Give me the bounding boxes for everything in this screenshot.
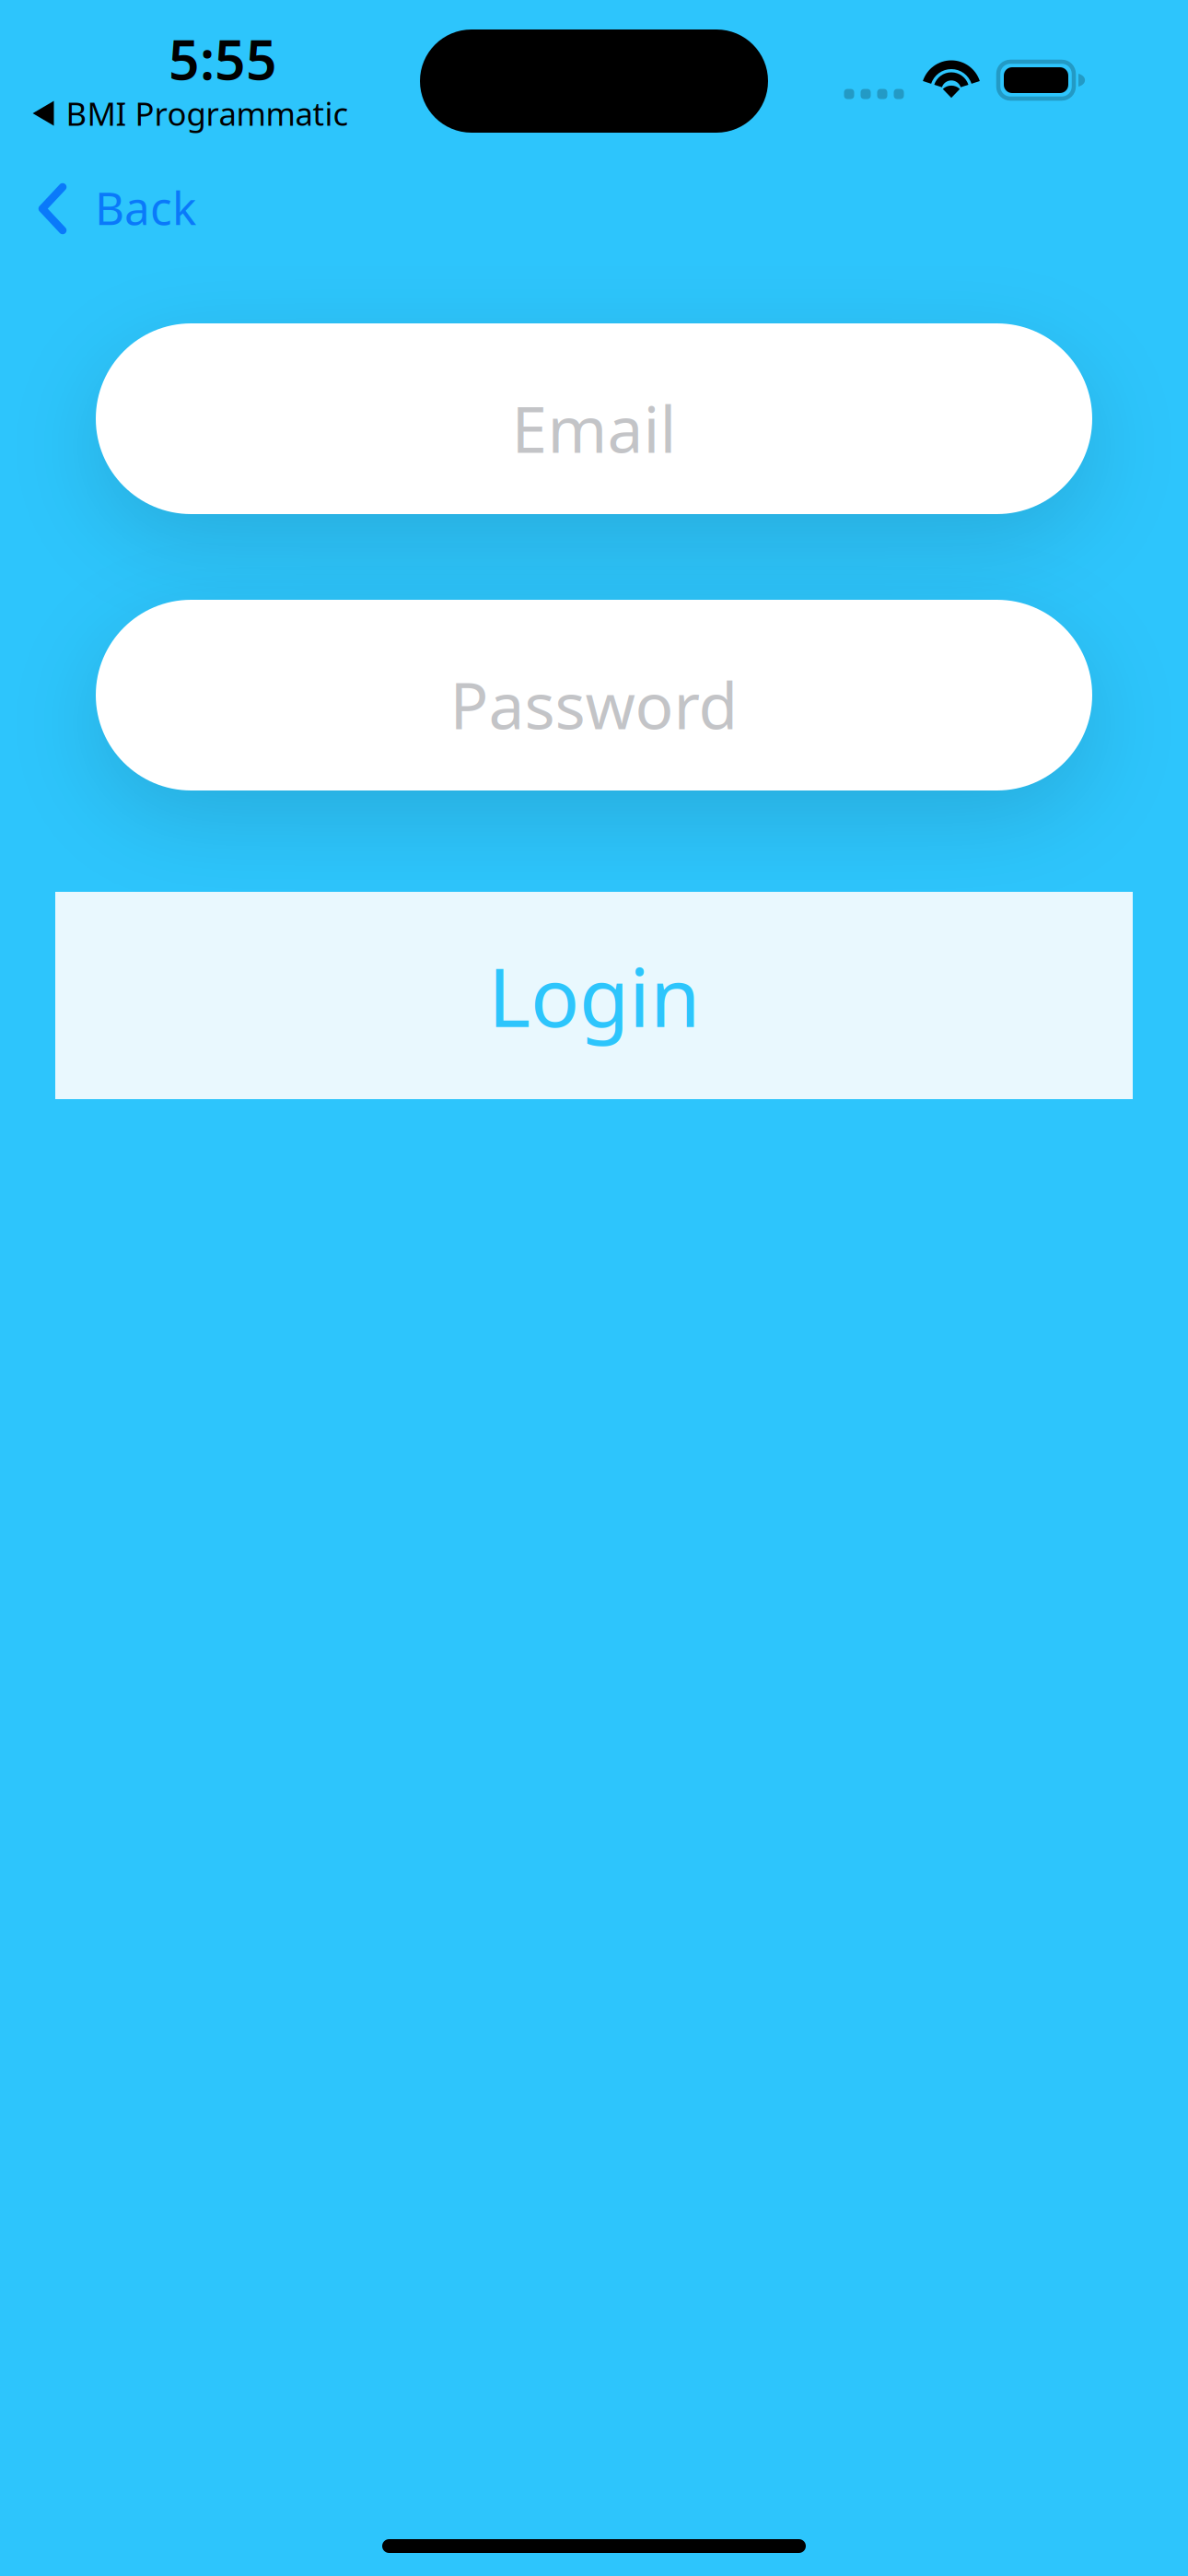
- staticText: 5:55: [169, 23, 277, 95]
- button[interactable]: Login: [0, 892, 1188, 1099]
- staticText: Password: [450, 662, 738, 747]
- button[interactable]: Email: [0, 323, 1188, 514]
- staticText: Login: [488, 942, 700, 1049]
- button[interactable]: Back: [0, 162, 224, 255]
- button[interactable]: Password: [0, 600, 1188, 790]
- staticText: Email: [512, 386, 676, 470]
- staticText: BMI Programmatic: [66, 92, 349, 135]
- staticText: Back: [95, 177, 196, 237]
